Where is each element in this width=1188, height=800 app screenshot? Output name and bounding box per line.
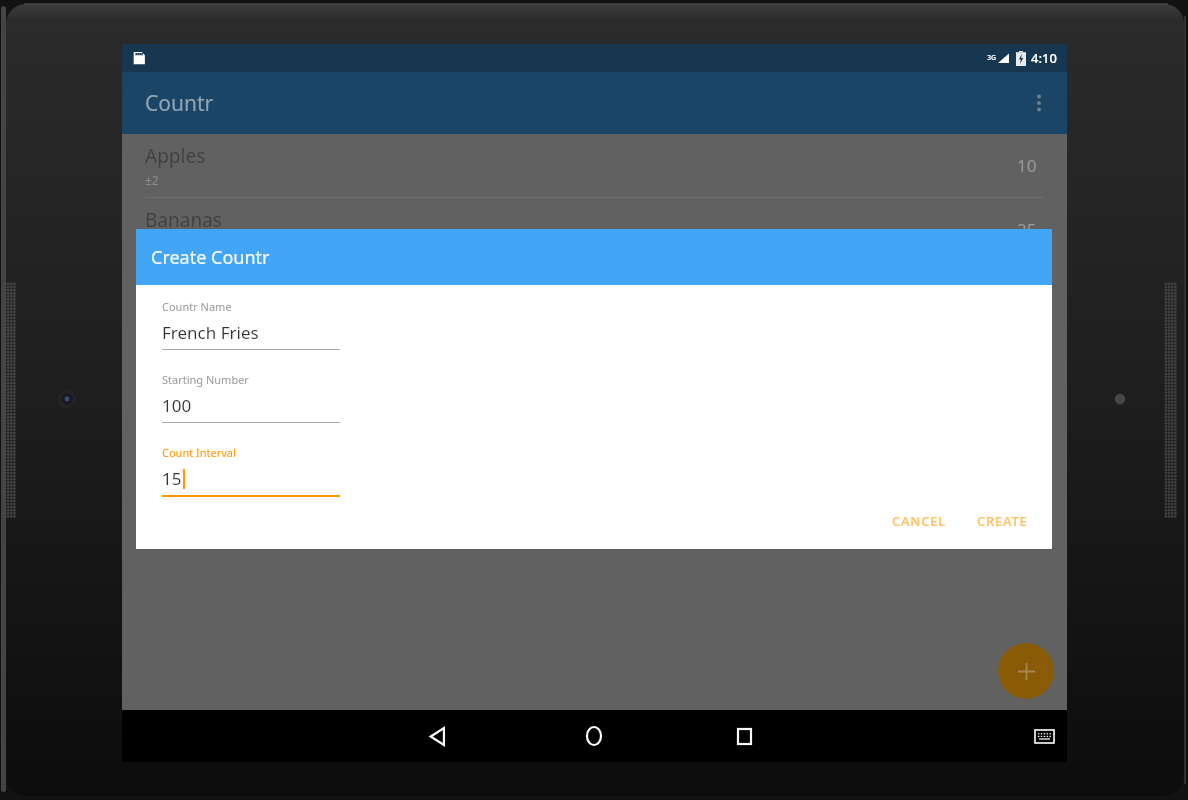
staticText: 25: [1017, 218, 1037, 241]
staticText: Doughnuts: [145, 335, 245, 361]
button[interactable]: Countr Name: [162, 299, 340, 350]
button[interactable]: Apples: [122, 134, 1067, 198]
button[interactable]: Bananas: [122, 198, 1067, 262]
staticText: Countr Name: [162, 299, 232, 314]
staticText: 3G: [987, 53, 997, 63]
button[interactable]: Recent apps: [728, 720, 760, 752]
button[interactable]: CREATE: [967, 503, 1038, 539]
staticText: ±20: [145, 364, 166, 380]
button[interactable]: More options: [1019, 83, 1059, 123]
staticText: 4:10: [1031, 49, 1057, 67]
staticText: ±5: [145, 236, 159, 252]
button[interactable]: Cherries: [122, 262, 1067, 326]
staticText: CREATE: [977, 512, 1028, 530]
button[interactable]: Doughnuts: [122, 326, 1067, 390]
staticText: Count Interval: [162, 445, 236, 460]
staticText: Starting Number: [162, 372, 249, 387]
staticText: Countr: [145, 89, 214, 118]
staticText: Apples: [145, 143, 206, 169]
staticText: CANCEL: [892, 512, 947, 530]
staticText: Bananas: [145, 207, 222, 233]
button[interactable]: Starting Number: [162, 372, 340, 423]
button[interactable]: Show keyboard: [1028, 720, 1060, 752]
staticText: 100: [162, 394, 192, 417]
button[interactable]: CANCEL: [882, 503, 957, 539]
staticText: French Fries: [162, 321, 259, 344]
button[interactable]: Count Interval: [162, 445, 340, 497]
button[interactable]: Home: [578, 720, 610, 752]
button[interactable]: Marshmallows: [122, 390, 1067, 454]
staticText: ±2: [145, 172, 159, 188]
staticText: Create Countr: [151, 245, 270, 270]
staticText: 10: [1017, 154, 1037, 177]
button[interactable]: Add countr: [998, 643, 1054, 699]
staticText: 15: [162, 467, 182, 490]
staticText: Cherries: [145, 271, 220, 297]
staticText: 7: [1027, 282, 1037, 305]
staticText: Marshmallows: [145, 399, 275, 425]
button[interactable]: Back: [422, 720, 454, 752]
